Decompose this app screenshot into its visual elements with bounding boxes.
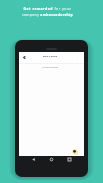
button[interactable]: Home [48,156,55,163]
button[interactable]: More options [76,57,79,60]
staticText: No referrals available [42,66,58,68]
button[interactable]: Back [30,156,37,163]
button[interactable]: Navigate back [20,53,29,62]
staticText: Get rewarded for your [21,6,74,11]
staticText: Refer a friend [43,55,57,58]
staticText: company ambassadorship [21,12,74,17]
button[interactable]: Add referral [72,149,78,155]
button[interactable]: Recent apps [66,156,73,163]
